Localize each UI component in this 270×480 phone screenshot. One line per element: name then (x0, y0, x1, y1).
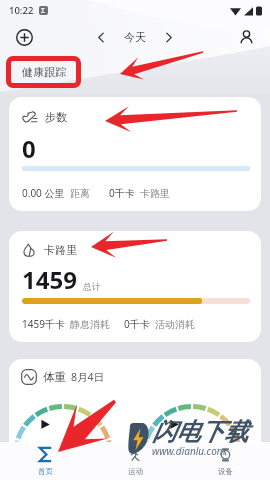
staticText: 距离 (70, 187, 90, 200)
button[interactable]: 设备 (180, 442, 270, 480)
staticText: 静息消耗 (70, 318, 110, 331)
button[interactable]: Previous day (91, 27, 111, 47)
button[interactable]: 步数 (9, 97, 261, 211)
staticText: 卡路里 (140, 187, 170, 200)
button[interactable]: 体重 (9, 359, 261, 456)
button[interactable]: Add (11, 24, 37, 50)
button[interactable]: 今天 (122, 27, 148, 47)
staticText: 闪电下载 (152, 417, 248, 447)
staticText: 设备 (218, 467, 233, 476)
staticText: 0 (22, 132, 36, 165)
staticText: 健康跟踪 (22, 65, 66, 79)
staticText: 8月4日 (71, 370, 105, 384)
staticText: 10:22 (9, 4, 34, 17)
staticText: 今天 (124, 30, 146, 44)
staticText: 0.00 公里 (22, 186, 65, 200)
button[interactable]: 运动 (90, 442, 180, 480)
staticText: 卡路里 (44, 243, 77, 257)
staticText: 首页 (38, 467, 53, 476)
staticText: www.dianlu.com (152, 444, 226, 458)
staticText: 步数 (45, 110, 67, 124)
staticText: 总计 (83, 281, 101, 292)
staticText: 运动 (128, 467, 143, 476)
staticText: 0千卡 (109, 186, 135, 200)
staticText: Σ (41, 6, 46, 15)
button[interactable]: Next day (159, 27, 179, 47)
staticText: 1459千卡 (22, 317, 65, 331)
staticText: 体重 (43, 370, 66, 384)
button[interactable]: Profile (233, 24, 259, 50)
button[interactable]: 卡路里 (9, 231, 261, 342)
staticText: 1459 (22, 263, 77, 296)
staticText: 0千卡 (124, 317, 150, 331)
staticText: 活动消耗 (155, 318, 195, 331)
button[interactable]: 首页 (0, 442, 90, 480)
